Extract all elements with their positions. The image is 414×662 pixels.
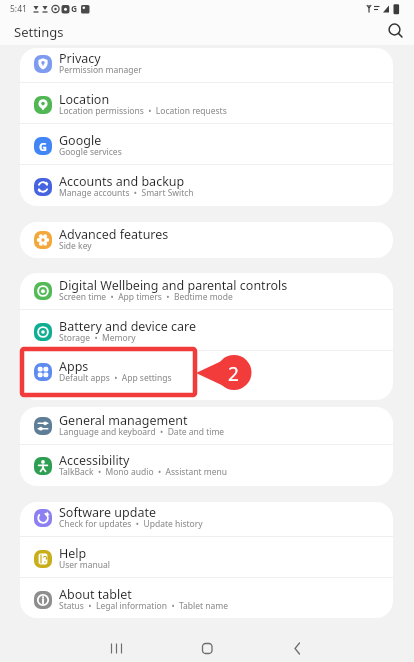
staticText: User manual: [59, 559, 389, 571]
staticText: Google: [59, 132, 389, 149]
staticText: Advanced features: [59, 226, 389, 243]
staticText: Default apps • App settings: [59, 372, 389, 384]
staticText: Language and keyboard • Date and time: [59, 426, 389, 438]
staticText: Screen time • App timers • Bedtime mode: [59, 291, 389, 303]
staticText: Status • Legal information • Tablet name: [59, 600, 389, 612]
button[interactable]: Advanced features: [20, 222, 393, 256]
button[interactable]: Accessibility: [20, 446, 393, 486]
staticText: General management: [59, 412, 389, 429]
staticText: About tablet: [59, 586, 389, 603]
button[interactable]: Battery and device care: [20, 312, 393, 352]
staticText: Storage • Memory: [59, 332, 389, 344]
staticText: G: [71, 3, 78, 15]
button[interactable]: [283, 634, 311, 662]
staticText: 2: [228, 361, 239, 387]
button[interactable]: Accounts and backup: [20, 167, 393, 206]
button[interactable]: General management: [20, 407, 393, 446]
staticText: Settings: [14, 23, 64, 41]
button[interactable]: About tablet: [20, 580, 393, 618]
staticText: Manage accounts • Smart Switch: [59, 187, 389, 199]
staticText: TalkBack • Mono audio • Assistant menu: [59, 466, 389, 478]
staticText: G: [39, 139, 47, 154]
staticText: Location permissions • Location requests: [59, 105, 389, 117]
staticText: Location: [59, 91, 389, 108]
staticText: Software update: [59, 504, 389, 521]
staticText: Battery and device care: [59, 318, 389, 335]
staticText: Digital Wellbeing and parental controls: [59, 277, 389, 294]
staticText: Privacy: [59, 50, 389, 67]
staticText: Side key: [59, 240, 389, 252]
button[interactable]: Apps: [20, 352, 393, 392]
button[interactable]: Location: [20, 85, 393, 125]
button[interactable]: [385, 20, 407, 42]
button[interactable]: Privacy: [20, 48, 393, 84]
button[interactable]: G: [20, 126, 393, 166]
button[interactable]: Digital Wellbeing and parental controls: [20, 273, 393, 311]
staticText: Accessibility: [59, 452, 389, 469]
button[interactable]: Help: [20, 539, 393, 579]
button[interactable]: Software update: [20, 502, 393, 538]
staticText: Apps: [59, 358, 389, 375]
staticText: 5:41: [10, 3, 27, 15]
staticText: Permission manager: [59, 64, 389, 76]
staticText: Accounts and backup: [59, 173, 389, 190]
button[interactable]: [103, 634, 131, 662]
staticText: Help: [59, 545, 389, 562]
staticText: Check for updates • Update history: [59, 518, 389, 530]
button[interactable]: [193, 634, 221, 662]
staticText: Google services: [59, 146, 389, 158]
